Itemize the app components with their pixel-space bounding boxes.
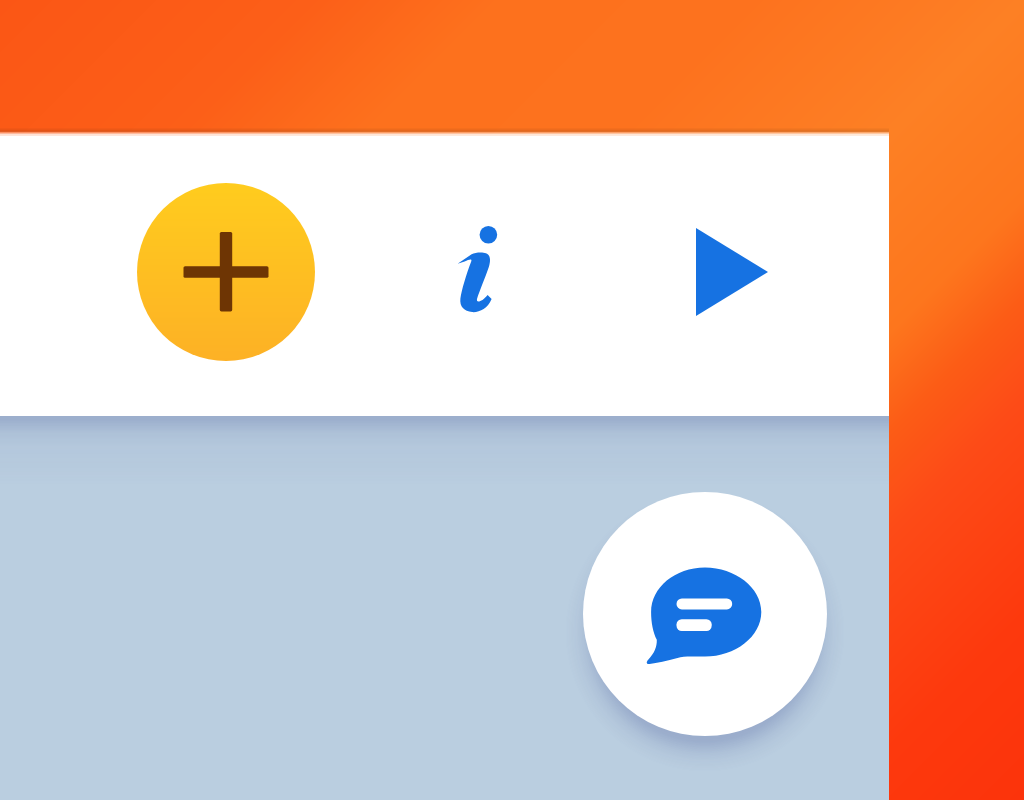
button[interactable]: Add xyxy=(137,183,315,361)
button[interactable]: Play xyxy=(680,215,790,330)
button[interactable]: Info xyxy=(440,210,510,326)
button[interactable]: New conversation xyxy=(583,492,827,736)
